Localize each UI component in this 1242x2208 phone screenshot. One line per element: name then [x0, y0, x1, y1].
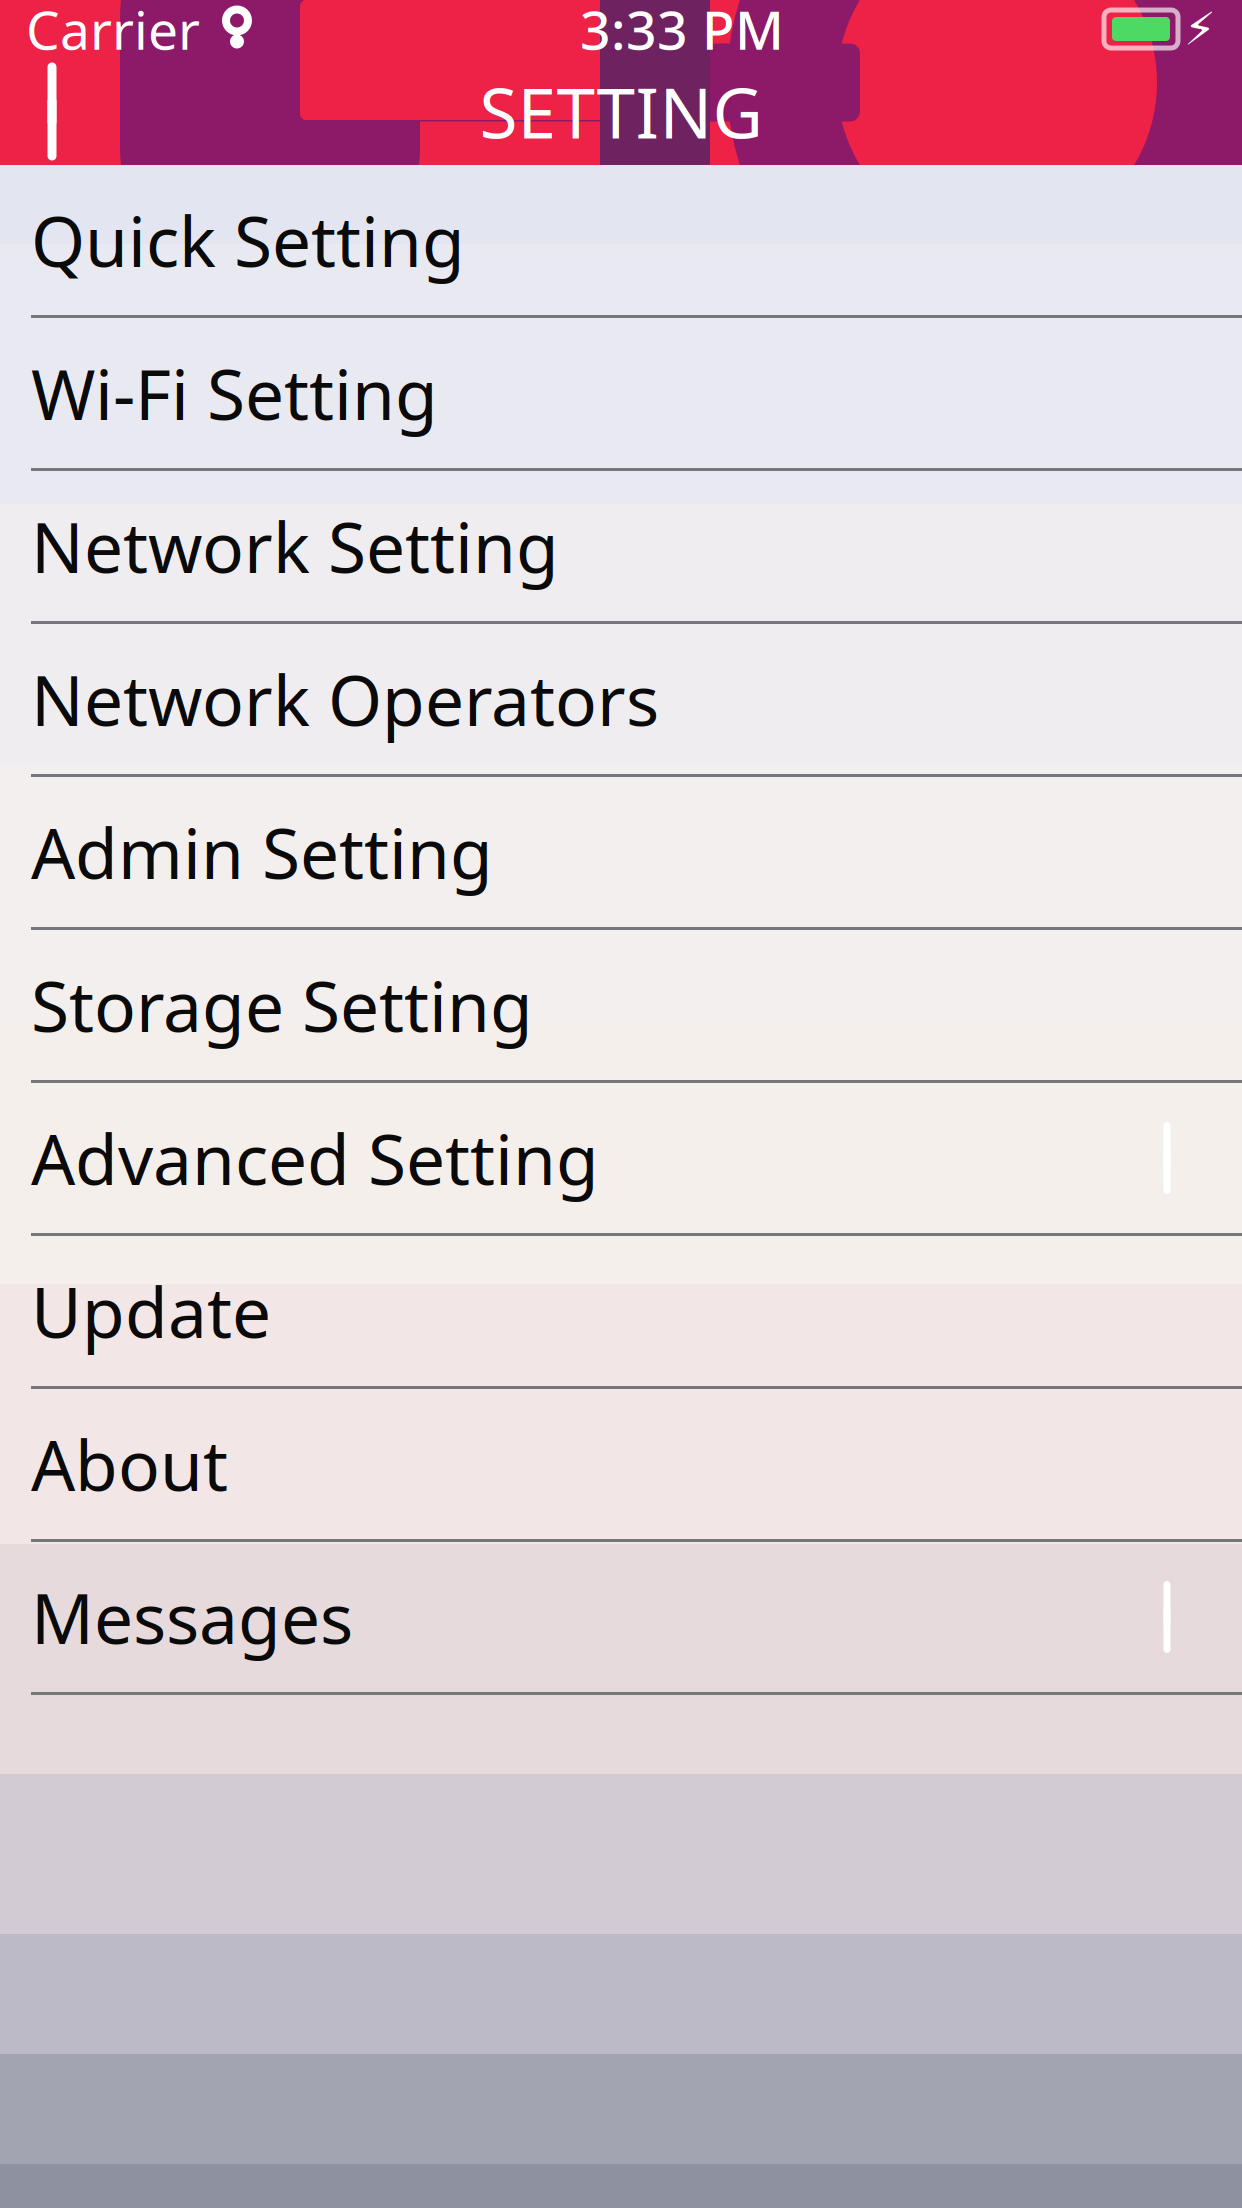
button[interactable]: Advanced Setting — [0, 1083, 1242, 1233]
button[interactable]: Storage Setting — [0, 930, 1242, 1080]
staticText: Admin Setting — [31, 806, 493, 898]
staticText: Update — [31, 1265, 271, 1357]
staticText: Quick Setting — [31, 194, 465, 286]
button[interactable]: Messages — [0, 1542, 1242, 1692]
staticText: SETTING — [479, 65, 762, 158]
button[interactable]: Network Operators — [0, 624, 1242, 774]
staticText: ⚡︎ — [1184, 3, 1216, 55]
staticText: About — [31, 1418, 228, 1510]
staticText: Wi-Fi Setting — [31, 347, 438, 439]
staticText: Messages — [31, 1571, 353, 1663]
button[interactable]: Quick Setting — [0, 165, 1242, 315]
button[interactable]: Wi-Fi Setting — [0, 318, 1242, 468]
button[interactable]: About — [0, 1389, 1242, 1539]
staticText: Carrier — [26, 0, 200, 64]
staticText: Network Operators — [31, 653, 659, 745]
button[interactable]: Network Setting — [0, 471, 1242, 621]
button[interactable]: Back — [0, 58, 120, 165]
staticText: 3:33 PM — [580, 0, 784, 64]
staticText: Storage Setting — [31, 959, 533, 1051]
staticText: Advanced Setting — [31, 1112, 599, 1204]
staticText: Network Setting — [31, 500, 559, 592]
button[interactable]: Update — [0, 1236, 1242, 1386]
button[interactable]: Admin Setting — [0, 777, 1242, 927]
